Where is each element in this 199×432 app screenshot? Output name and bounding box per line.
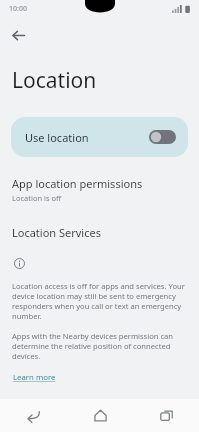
- staticText: Apps with the Nearby devices permission …: [12, 331, 189, 361]
- button[interactable]: Learn more: [12, 371, 57, 384]
- button[interactable]: App location permissions: [0, 174, 199, 205]
- staticText: Location is off: [12, 193, 62, 203]
- button[interactable]: Back: [0, 399, 67, 432]
- staticText: Location Services: [12, 225, 101, 240]
- button[interactable]: Use location: [11, 117, 188, 157]
- staticText: Location access is off for apps and serv…: [12, 281, 189, 321]
- staticText: 10:00: [9, 4, 27, 14]
- button[interactable]: Home: [67, 399, 133, 432]
- staticText: Learn more: [13, 372, 56, 383]
- button[interactable]: Navigate up: [3, 20, 33, 50]
- button[interactable]: Location Services: [0, 223, 199, 242]
- staticText: Location: [12, 66, 97, 95]
- staticText: Use location: [25, 130, 89, 145]
- staticText: App location permissions: [12, 176, 143, 191]
- button[interactable]: Recent apps: [133, 399, 199, 432]
